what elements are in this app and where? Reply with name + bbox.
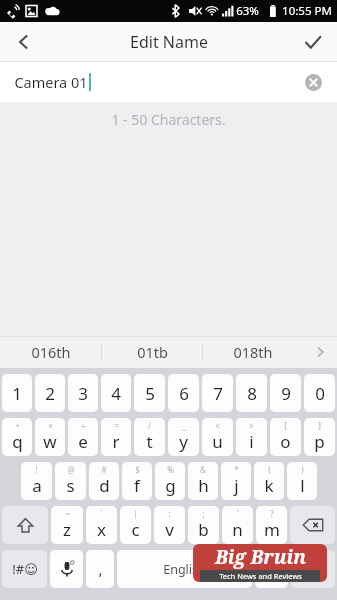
staticText: ~: [65, 508, 70, 519]
staticText: !: [35, 464, 38, 475]
button[interactable]: <: [202, 418, 233, 456]
button[interactable]: 016th: [0, 336, 101, 368]
staticText: ?: [270, 508, 274, 519]
staticText: h: [198, 474, 209, 497]
staticText: Tech News and Reviews: [219, 571, 302, 581]
staticText: 8: [247, 382, 257, 405]
button[interactable]: ?: [256, 506, 287, 544]
button[interactable]: 01tb: [102, 336, 202, 368]
button[interactable]: ;: [188, 506, 219, 544]
staticText: @: [67, 464, 75, 475]
button[interactable]: Confirm: [289, 22, 337, 62]
button[interactable]: +: [2, 418, 32, 456]
button[interactable]: 9: [270, 374, 301, 412]
staticText: ;: [202, 508, 205, 519]
button[interactable]: 3: [68, 374, 98, 412]
button[interactable]: *: [221, 462, 251, 500]
button[interactable]: 8: [236, 374, 267, 412]
button[interactable]: |: [120, 506, 151, 544]
button[interactable]: #: [89, 462, 119, 500]
staticText: :: [168, 508, 171, 519]
staticText: s: [66, 474, 75, 497]
button[interactable]: 2: [35, 374, 65, 412]
staticText: *: [234, 464, 239, 475]
button[interactable]: Back: [0, 22, 48, 62]
staticText: v: [165, 518, 174, 541]
button[interactable]: .: [255, 550, 288, 588]
button[interactable]: Camera 01: [0, 62, 337, 102]
button[interactable]: ]: [304, 418, 335, 456]
staticText: 016th: [31, 342, 71, 362]
staticText: i: [249, 430, 254, 453]
button[interactable]: Voice input: [50, 550, 83, 588]
staticText: 6: [179, 382, 189, 405]
staticText: ': [237, 508, 239, 519]
button[interactable]: English: [117, 550, 252, 588]
staticText: <: [215, 420, 220, 431]
button[interactable]: !: [21, 462, 52, 500]
button[interactable]: ×: [35, 418, 65, 456]
staticText: ÷: [81, 420, 86, 431]
staticText: ): [301, 464, 304, 475]
staticText: n: [232, 518, 243, 541]
button[interactable]: >: [236, 418, 267, 456]
button[interactable]: Clear text: [297, 62, 329, 102]
button[interactable]: =: [101, 418, 131, 456]
button[interactable]: ÷: [68, 418, 98, 456]
button[interactable]: !#☺: [2, 550, 47, 588]
button[interactable]: _: [168, 418, 199, 456]
button[interactable]: 018th: [203, 336, 303, 368]
staticText: Camera 01: [14, 72, 88, 92]
staticText: %: [167, 464, 174, 475]
button[interactable]: :: [154, 506, 185, 544]
button[interactable]: $: [122, 462, 152, 500]
button[interactable]: 4: [101, 374, 131, 412]
button[interactable]: 6: [168, 374, 199, 412]
staticText: ,: [98, 559, 103, 579]
staticText: f: [134, 474, 140, 497]
button[interactable]: `: [86, 506, 117, 544]
staticText: c: [131, 518, 140, 541]
button[interactable]: More suggestions: [303, 336, 337, 368]
button[interactable]: %: [155, 462, 185, 500]
staticText: /: [148, 420, 151, 431]
staticText: ⏎: [307, 561, 320, 578]
staticText: t: [146, 430, 153, 453]
staticText: =: [114, 420, 119, 431]
staticText: 63%: [236, 3, 259, 19]
button[interactable]: ⏎: [291, 550, 335, 588]
button[interactable]: ,: [86, 550, 114, 588]
staticText: English: [163, 561, 206, 578]
staticText: 1: [12, 382, 22, 405]
staticText: k: [264, 474, 274, 497]
staticText: #: [101, 464, 107, 475]
staticText: ]: [318, 420, 321, 431]
button[interactable]: ~: [51, 506, 83, 544]
button[interactable]: ': [222, 506, 253, 544]
staticText: +: [15, 420, 20, 431]
button[interactable]: 7: [202, 374, 233, 412]
button[interactable]: Shift: [2, 506, 48, 544]
button[interactable]: Backspace: [290, 506, 335, 544]
staticText: (: [268, 464, 271, 475]
staticText: _: [182, 420, 186, 431]
staticText: !#☺: [12, 560, 38, 578]
button[interactable]: 5: [134, 374, 165, 412]
button[interactable]: [: [270, 418, 301, 456]
staticText: d: [99, 474, 110, 497]
button[interactable]: ): [287, 462, 317, 500]
staticText: w: [43, 430, 57, 453]
button[interactable]: 1: [2, 374, 32, 412]
staticText: b: [198, 518, 209, 541]
staticText: u: [212, 430, 223, 453]
staticText: [: [284, 420, 287, 431]
button[interactable]: /: [134, 418, 165, 456]
staticText: 4: [111, 382, 121, 405]
staticText: z: [63, 518, 71, 541]
button[interactable]: &: [188, 462, 218, 500]
staticText: $: [135, 464, 140, 475]
staticText: o: [280, 430, 291, 453]
button[interactable]: 0: [304, 374, 335, 412]
button[interactable]: @: [55, 462, 86, 500]
button[interactable]: (: [254, 462, 284, 500]
